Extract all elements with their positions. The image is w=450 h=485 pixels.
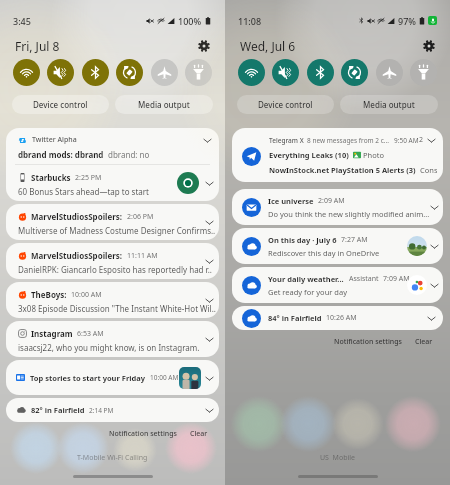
staticText: Everything Leaks (10) xyxy=(269,150,349,160)
staticText: Clear xyxy=(415,337,433,347)
button[interactable]: MarvelStudiosSpoilers: xyxy=(6,204,219,240)
staticText: 7:09 AM xyxy=(383,274,410,284)
button[interactable]: Device control xyxy=(12,95,109,114)
button[interactable]: Expand xyxy=(425,312,437,324)
staticText: On this day · July 6 xyxy=(268,235,337,245)
button[interactable]: Media output xyxy=(115,95,213,114)
staticText: 97% xyxy=(398,15,416,27)
button[interactable]: Expand xyxy=(203,333,215,345)
button[interactable]: Expand xyxy=(425,134,437,146)
staticText: 10:00 AM xyxy=(71,290,102,300)
staticText: Your daily weather... xyxy=(268,274,344,284)
button[interactable]: 82° in Fairfield xyxy=(6,398,219,422)
staticText: MarvelStudiosSpoilers: xyxy=(31,211,123,222)
button[interactable]: Device control xyxy=(237,95,334,114)
staticText: 2:06 PM xyxy=(127,212,154,222)
button[interactable]: Ice universe xyxy=(232,189,443,225)
staticText: Media output xyxy=(363,99,415,110)
button[interactable]: Your daily weather... xyxy=(232,267,443,303)
staticText: Device control xyxy=(33,99,88,110)
staticText: 9:50 AM xyxy=(394,136,419,145)
staticText: 3:45 xyxy=(13,15,31,27)
staticText: 10:00 AM xyxy=(150,373,179,382)
staticText: 2:09 AM xyxy=(318,196,345,206)
button[interactable]: Expand xyxy=(203,216,215,228)
staticText: dbrand mods: dbrand xyxy=(18,149,104,160)
button[interactable]: MarvelStudiosSpoilers: xyxy=(6,243,219,279)
staticText: 11:08 xyxy=(238,15,262,27)
staticText: 6:53 AM xyxy=(77,329,104,339)
button[interactable]: Airplane mode xyxy=(151,59,178,86)
button[interactable]: Media output xyxy=(340,95,438,114)
button[interactable]: Expand xyxy=(203,294,215,306)
button[interactable]: Sound xyxy=(272,59,299,86)
staticText: 84° in Fairfield xyxy=(268,313,322,323)
button[interactable]: Airplane mode xyxy=(376,59,403,86)
staticText: T-Mobile Wi-Fi Calling xyxy=(77,453,148,463)
staticText: 100% xyxy=(178,15,202,27)
button[interactable]: Notification settings xyxy=(331,336,405,348)
staticText: Telegram X xyxy=(269,136,304,145)
staticText: Notification settings xyxy=(334,337,402,347)
staticText: 2:14 PM xyxy=(89,406,114,415)
staticText: Device control xyxy=(258,99,313,110)
staticText: Clear xyxy=(190,429,208,439)
button[interactable]: Twitter Alpha xyxy=(6,128,219,164)
staticText: Ice universe xyxy=(268,196,314,206)
button[interactable]: Sound xyxy=(47,59,74,86)
staticText: Photo xyxy=(363,150,384,160)
button[interactable]: Auto rotate xyxy=(341,59,368,86)
staticText: Do you think the new slightly modified a… xyxy=(268,209,430,219)
staticText: 82° in Fairfield xyxy=(31,405,85,415)
button[interactable]: Top stories to start your Friday xyxy=(6,360,219,395)
staticText: Wed, Jul 6 xyxy=(240,38,296,54)
staticText: DanielRPK: Giancarlo Esposito has report… xyxy=(18,264,212,275)
button[interactable]: 84° in Fairfield xyxy=(232,306,443,330)
staticText: 10:26 AM xyxy=(326,313,357,323)
staticText: 60 Bonus Stars ahead—tap to start xyxy=(18,186,149,197)
button[interactable]: Auto rotate xyxy=(116,59,143,86)
staticText: NowInStock.net PlayStation 5 Alerts (3) xyxy=(269,165,416,175)
staticText: Top stories to start your Friday xyxy=(30,373,146,383)
staticText: 3x08 Episode Discussion "The Instant Whi… xyxy=(18,303,216,314)
staticText: Twitter Alpha xyxy=(32,135,77,145)
button[interactable]: On this day · July 6 xyxy=(232,228,443,264)
staticText: isaacsj22, who you might know, is on Ins… xyxy=(18,342,200,353)
staticText: 2 xyxy=(419,135,424,145)
staticText: Starbucks xyxy=(31,172,71,183)
staticText: 11:11 AM xyxy=(127,251,158,261)
button[interactable]: TheBoys: xyxy=(6,282,219,318)
staticText: Multiverse of Madness Costume Designer C… xyxy=(18,225,216,236)
staticText: US Mobile xyxy=(320,453,356,463)
button[interactable]: Expand xyxy=(203,404,215,416)
staticText: 7:27 AM xyxy=(341,235,368,245)
staticText: Media output xyxy=(138,99,190,110)
button[interactable]: Wi-Fi xyxy=(13,59,40,86)
button[interactable]: Clear xyxy=(412,336,436,348)
staticText: Assistant xyxy=(349,274,379,284)
button[interactable]: Bluetooth xyxy=(307,59,334,86)
button[interactable]: Starbucks xyxy=(6,165,219,201)
button[interactable]: Expand xyxy=(201,134,213,146)
button[interactable]: Telegram X xyxy=(232,128,443,182)
button[interactable]: Expand xyxy=(428,201,440,213)
button[interactable]: Expand xyxy=(204,372,215,384)
staticText: 2:25 PM xyxy=(75,173,102,183)
staticText: Get ready for your day xyxy=(268,287,347,297)
button[interactable]: Clear xyxy=(187,428,211,440)
button[interactable]: Flashlight xyxy=(410,59,437,86)
button[interactable]: Flashlight xyxy=(185,59,212,86)
button[interactable]: Expand xyxy=(203,177,215,189)
staticText: Rediscover this day in OneDrive xyxy=(268,248,380,258)
button[interactable]: Settings xyxy=(420,37,438,55)
staticText: dbrand: no xyxy=(108,149,150,160)
button[interactable]: Wi-Fi xyxy=(238,59,265,86)
button[interactable]: Expand xyxy=(428,279,440,291)
button[interactable]: Bluetooth xyxy=(82,59,109,86)
staticText: Cons... xyxy=(420,165,437,175)
button[interactable]: Settings xyxy=(195,37,213,55)
button[interactable]: Expand xyxy=(203,255,215,267)
button[interactable]: Instagram xyxy=(6,321,219,357)
button[interactable]: Expand xyxy=(428,240,440,252)
button[interactable]: Notification settings xyxy=(106,428,180,440)
